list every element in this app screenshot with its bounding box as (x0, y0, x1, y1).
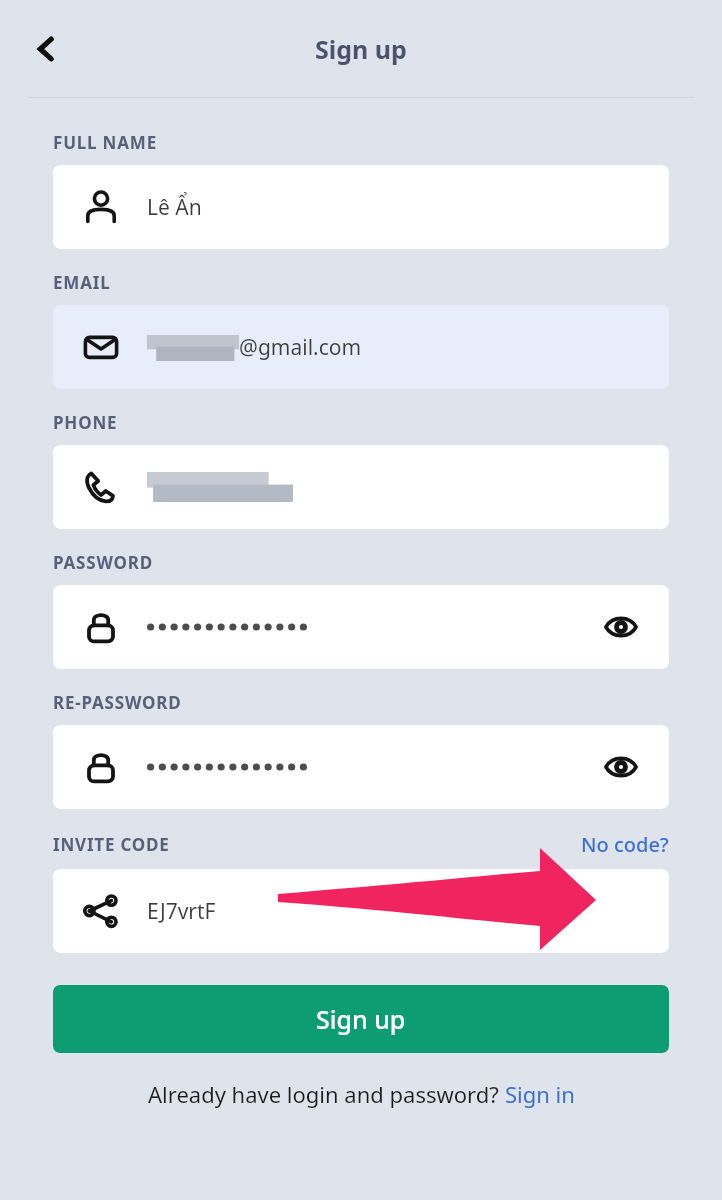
button[interactable]: Show password (53, 585, 669, 669)
button[interactable]: Sign up (53, 985, 669, 1053)
staticText: EJ7vrtF (147, 897, 216, 926)
button[interactable]: No code? (581, 831, 669, 858)
staticText: PASSWORD (53, 551, 153, 574)
staticText: Sign up (316, 1002, 406, 1036)
staticText: Sign up (315, 32, 407, 66)
staticText: No code? (581, 831, 669, 858)
staticText: PHONE (53, 411, 118, 434)
button[interactable]: Show password (595, 741, 647, 793)
button[interactable]: EJ7vrtF (53, 869, 669, 953)
staticText: Sign in (505, 1079, 575, 1109)
staticText: Lê Ẩn (147, 193, 202, 222)
staticText: EMAIL (53, 271, 111, 294)
button[interactable] (53, 445, 669, 529)
button[interactable]: Back (20, 23, 72, 75)
button[interactable]: Show password (595, 601, 647, 653)
staticText: RE-PASSWORD (53, 691, 182, 714)
button[interactable]: Already have login and password? (148, 1079, 575, 1109)
button[interactable]: Lê Ẩn (53, 165, 669, 249)
staticText: FULL NAME (53, 131, 157, 154)
staticText: @gmail.com (239, 333, 362, 362)
button[interactable]: Show password (53, 725, 669, 809)
button[interactable]: @gmail.com (53, 305, 669, 389)
staticText: INVITE CODE (53, 833, 170, 856)
staticText: Already have login and password? (148, 1079, 505, 1109)
